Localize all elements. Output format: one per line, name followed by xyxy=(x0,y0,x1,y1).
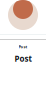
staticText: Post xyxy=(14,53,31,64)
staticText: Post xyxy=(18,44,27,49)
